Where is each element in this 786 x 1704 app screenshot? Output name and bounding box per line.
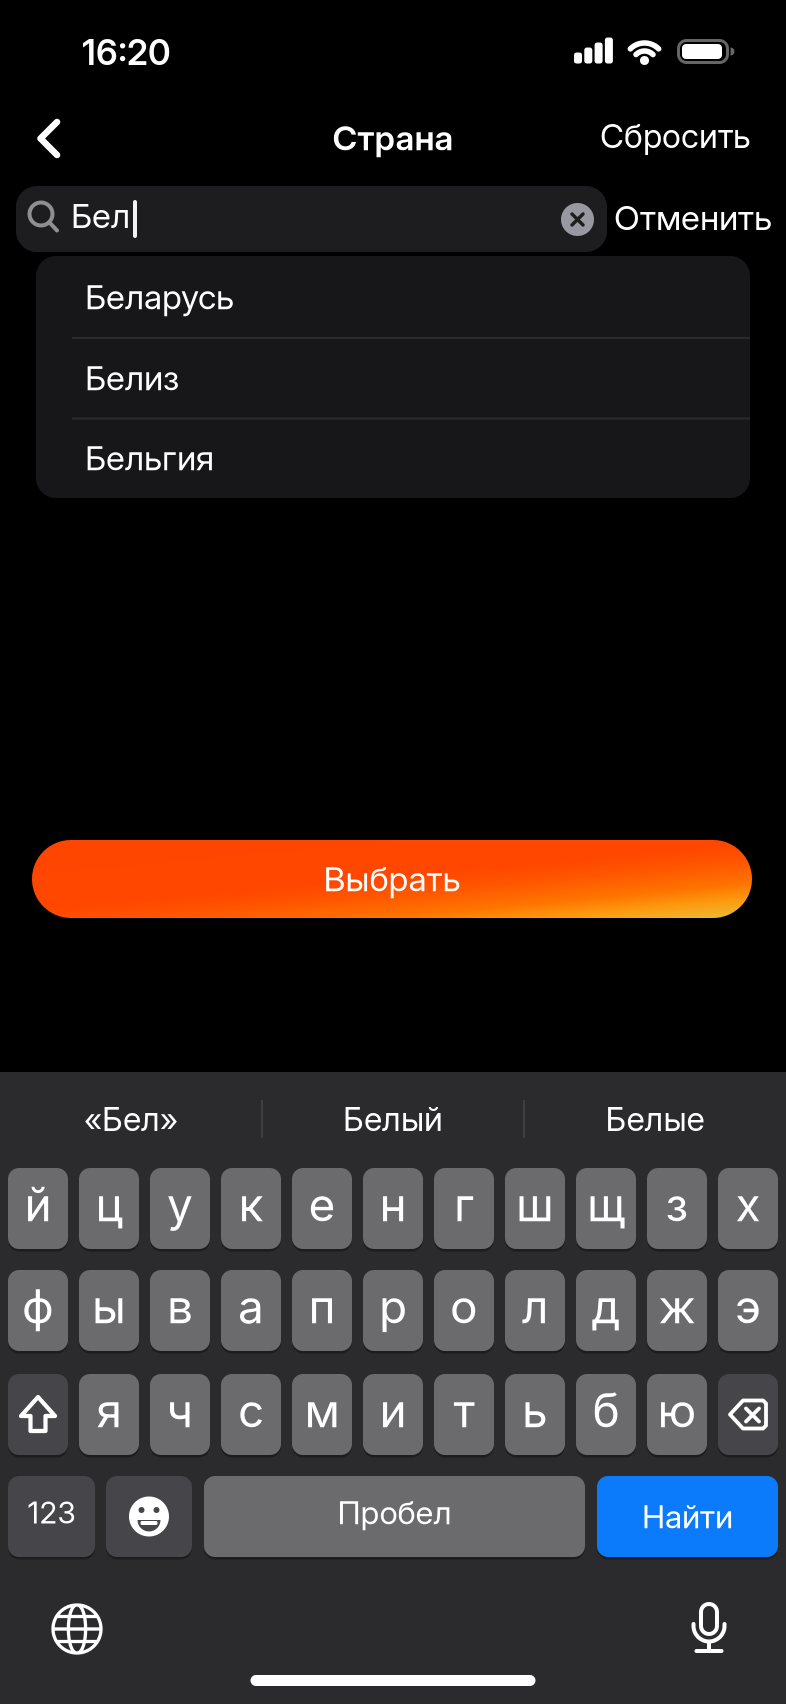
button[interactable]: Найти xyxy=(597,1476,778,1557)
button[interactable]: ч xyxy=(150,1374,210,1455)
staticText: е xyxy=(308,1177,335,1232)
button[interactable]: т xyxy=(434,1374,494,1455)
staticText: х xyxy=(735,1177,760,1232)
button[interactable]: Search xyxy=(16,186,607,252)
button[interactable]: Clear text xyxy=(561,203,594,236)
staticText: 16:20 xyxy=(82,31,171,73)
staticText: ч xyxy=(166,1383,193,1438)
staticText: Сбросить xyxy=(600,116,751,156)
button[interactable]: «Бел» xyxy=(11,1089,251,1149)
staticText: т xyxy=(453,1383,474,1438)
staticText: о xyxy=(450,1279,478,1334)
button[interactable]: ш xyxy=(505,1168,565,1249)
button[interactable]: и xyxy=(363,1374,423,1455)
button[interactable]: х xyxy=(718,1168,778,1249)
button[interactable]: Dictation xyxy=(679,1598,739,1658)
staticText: а xyxy=(238,1279,264,1334)
button[interactable]: Пробел xyxy=(204,1476,585,1557)
button[interactable]: у xyxy=(150,1168,210,1249)
button[interactable]: к xyxy=(221,1168,281,1249)
button[interactable]: Беларусь xyxy=(36,257,786,337)
staticText: м xyxy=(304,1383,339,1438)
button[interactable]: Next keyboard xyxy=(47,1599,107,1659)
staticText: я xyxy=(96,1383,121,1438)
staticText: Отменить xyxy=(614,197,772,238)
staticText: Белый xyxy=(343,1099,443,1139)
button[interactable]: в xyxy=(150,1270,210,1351)
staticText: Беларусь xyxy=(85,276,234,317)
staticText: Белиз xyxy=(85,357,179,398)
staticText: 123 xyxy=(27,1494,75,1531)
button[interactable]: Белиз xyxy=(36,338,786,418)
button[interactable]: г xyxy=(434,1168,494,1249)
button[interactable]: ж xyxy=(647,1270,707,1351)
button[interactable]: Сбросить xyxy=(600,116,751,156)
staticText: л xyxy=(522,1279,548,1334)
staticText: Страна xyxy=(332,117,453,158)
staticText: с xyxy=(238,1383,264,1438)
button[interactable]: 123 xyxy=(8,1476,95,1557)
button[interactable]: д xyxy=(576,1270,636,1351)
staticText: ш xyxy=(516,1177,554,1232)
button[interactable]: Отменить xyxy=(614,197,772,238)
button[interactable]: Delete xyxy=(718,1374,778,1455)
button[interactable]: Back xyxy=(37,118,63,159)
button[interactable]: с xyxy=(221,1374,281,1455)
staticText: Бел xyxy=(71,195,130,236)
staticText: б xyxy=(592,1383,619,1438)
staticText: Выбрать xyxy=(323,858,460,899)
staticText: г xyxy=(454,1177,474,1232)
staticText: ь xyxy=(522,1383,548,1438)
staticText: к xyxy=(238,1177,263,1232)
button[interactable]: Shift xyxy=(8,1374,68,1455)
button[interactable]: Выбрать xyxy=(32,840,752,918)
staticText: Найти xyxy=(642,1497,733,1536)
button[interactable]: ю xyxy=(647,1374,707,1455)
button[interactable]: ь xyxy=(505,1374,565,1455)
staticText: й xyxy=(24,1177,51,1232)
staticText: в xyxy=(167,1279,193,1334)
button[interactable]: м xyxy=(292,1374,352,1455)
staticText: п xyxy=(308,1279,335,1334)
staticText: э xyxy=(735,1279,761,1334)
button[interactable]: ф xyxy=(8,1270,68,1351)
button[interactable]: ы xyxy=(79,1270,139,1351)
button[interactable]: Белый xyxy=(273,1089,513,1149)
button[interactable]: Emoji xyxy=(106,1476,192,1557)
button[interactable]: а xyxy=(221,1270,281,1351)
button[interactable]: п xyxy=(292,1270,352,1351)
staticText: ы xyxy=(92,1279,126,1334)
button[interactable]: щ xyxy=(576,1168,636,1249)
button[interactable]: р xyxy=(363,1270,423,1351)
staticText: ф xyxy=(22,1279,54,1334)
staticText: щ xyxy=(587,1177,625,1232)
button[interactable]: я xyxy=(79,1374,139,1455)
staticText: н xyxy=(379,1177,406,1232)
staticText: «Бел» xyxy=(84,1099,178,1139)
button[interactable]: б xyxy=(576,1374,636,1455)
button[interactable]: э xyxy=(718,1270,778,1351)
staticText: ж xyxy=(658,1279,695,1334)
button[interactable]: з xyxy=(647,1168,707,1249)
staticText: ц xyxy=(95,1177,122,1232)
staticText: Пробел xyxy=(337,1493,451,1532)
staticText: у xyxy=(167,1177,193,1232)
button[interactable]: н xyxy=(363,1168,423,1249)
staticText: и xyxy=(379,1383,406,1438)
button[interactable]: й xyxy=(8,1168,68,1249)
staticText: Белые xyxy=(605,1099,704,1139)
button[interactable]: л xyxy=(505,1270,565,1351)
button[interactable]: ц xyxy=(79,1168,139,1249)
staticText: ю xyxy=(657,1383,696,1438)
staticText: д xyxy=(591,1279,620,1334)
staticText: з xyxy=(665,1177,688,1232)
button[interactable]: Бельгия xyxy=(36,418,786,498)
staticText: р xyxy=(379,1279,407,1334)
button[interactable]: о xyxy=(434,1270,494,1351)
staticText: Бельгия xyxy=(85,437,214,478)
button[interactable]: Белые xyxy=(535,1089,775,1149)
button[interactable]: е xyxy=(292,1168,352,1249)
